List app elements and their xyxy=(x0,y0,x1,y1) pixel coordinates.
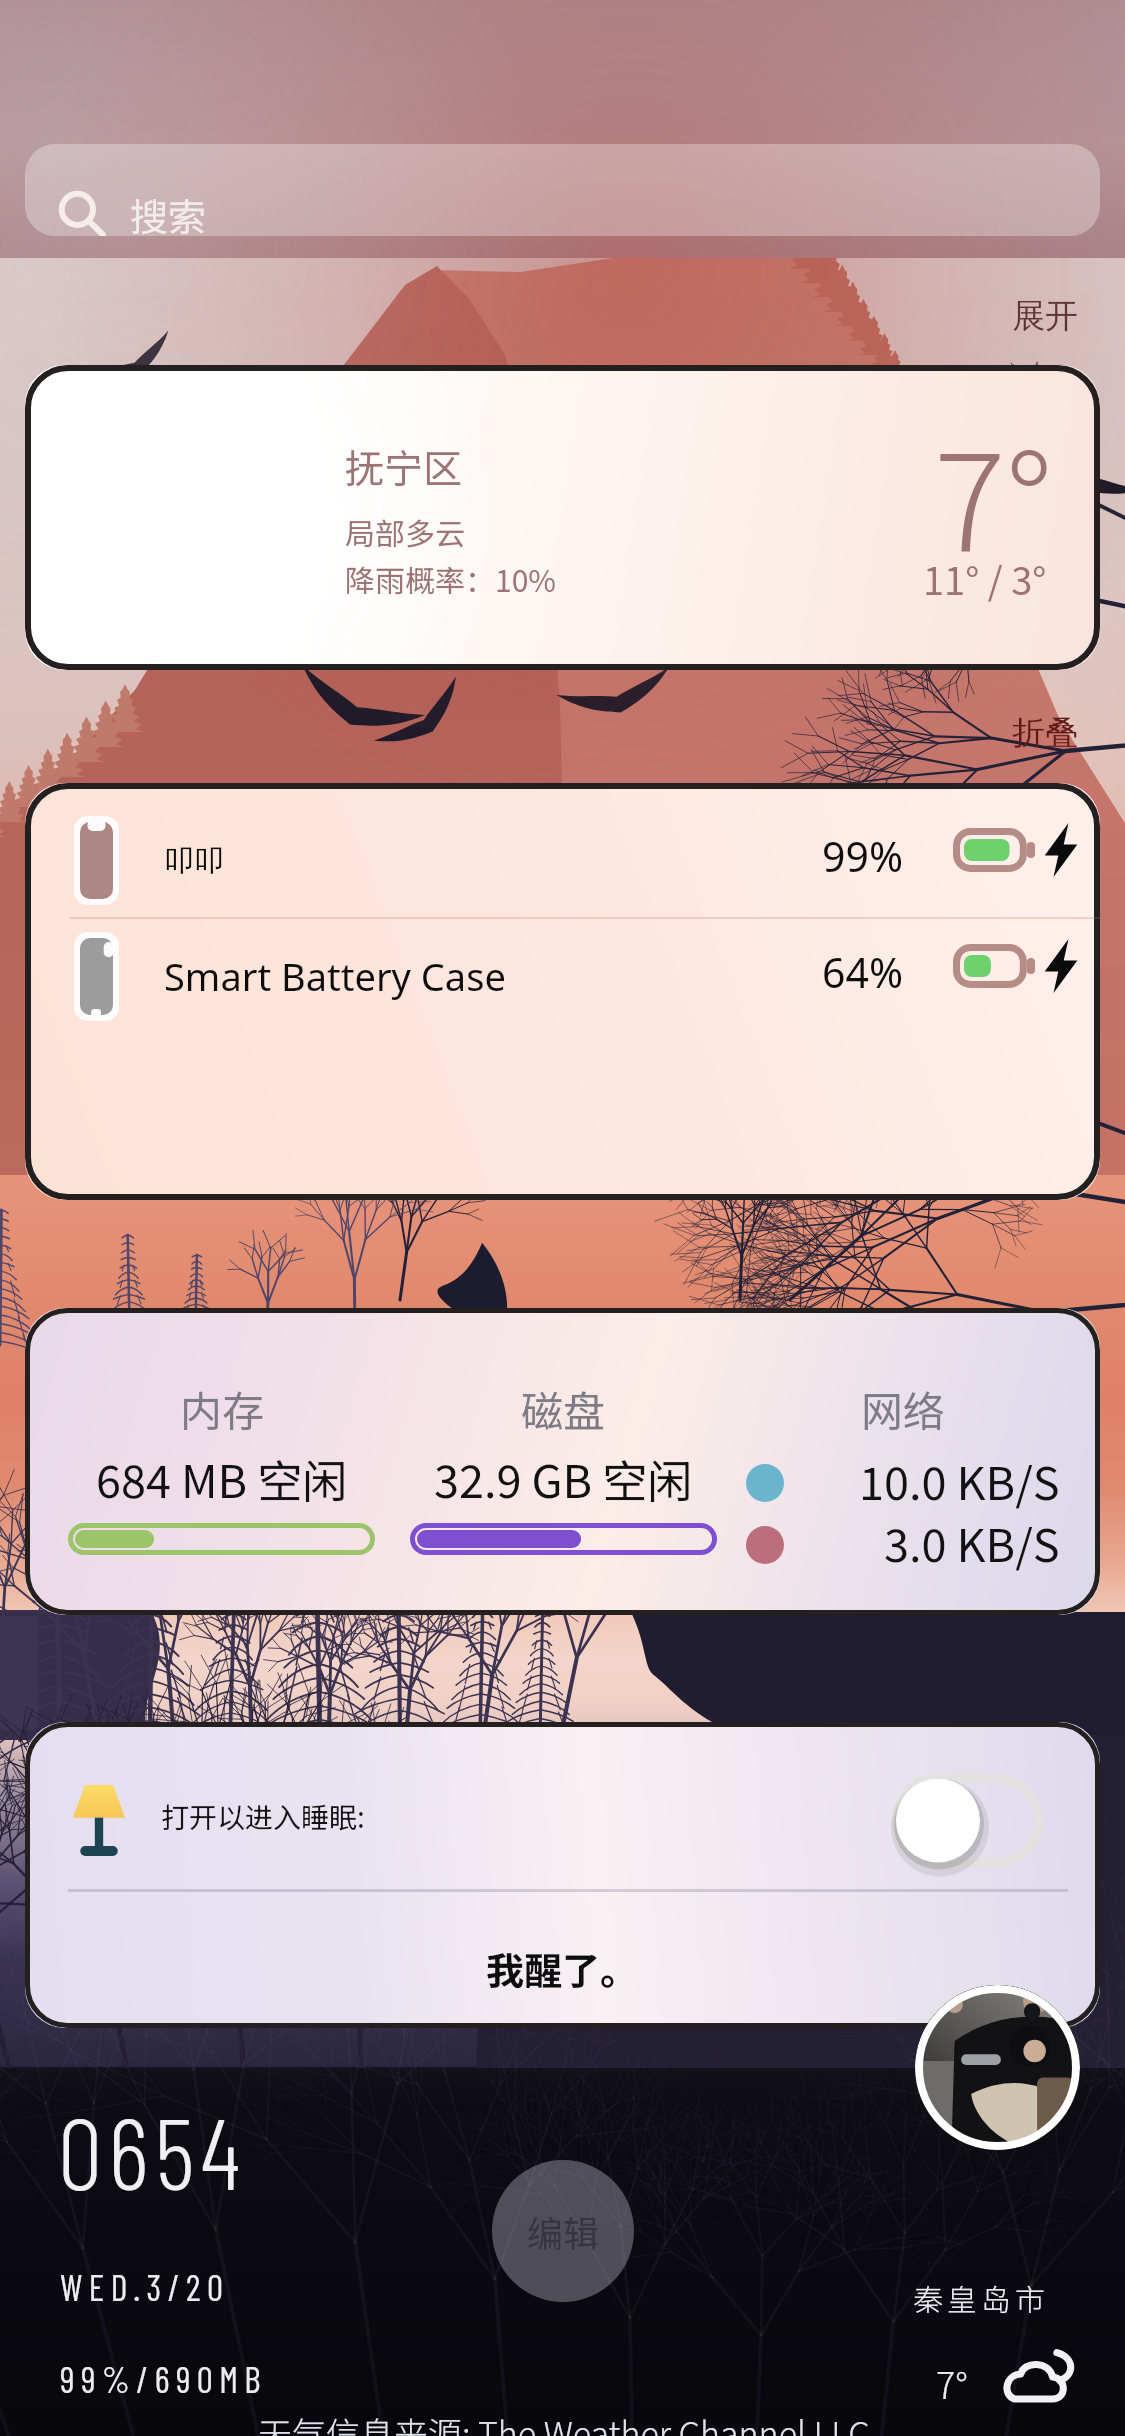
button[interactable]: 展开 xyxy=(1012,295,1078,337)
staticText: 折叠 xyxy=(1012,712,1078,754)
staticText: WED.3/20 xyxy=(60,2265,230,2308)
staticText: 打开以进入睡眠: xyxy=(161,1796,365,1837)
staticText: 降雨概率：10% xyxy=(345,557,556,600)
button[interactable]: 折叠 xyxy=(1012,712,1078,754)
staticText: 我醒了。 xyxy=(486,1941,639,1996)
staticText: 32.9 GB 空闲 xyxy=(434,1446,693,1511)
staticText: 天气信息来源: The Weather Channel LLC xyxy=(258,2408,870,2436)
button[interactable]: 打开以进入睡眠: xyxy=(25,1722,1100,2028)
staticText: 磁盘 xyxy=(521,1378,606,1439)
staticText: 秦皇岛市 xyxy=(913,2276,1049,2319)
staticText: 99%/690MB xyxy=(60,2357,267,2400)
staticText: 684 MB 空闲 xyxy=(96,1446,348,1511)
staticText: 编辑 xyxy=(527,2205,600,2257)
button[interactable]: 搜索 xyxy=(25,144,1100,236)
button[interactable]: 叩叩 xyxy=(25,783,1100,1200)
button[interactable]: Profile picture xyxy=(915,1985,1080,2150)
staticText: 3.0 KB/S xyxy=(884,1510,1060,1575)
button[interactable]: 叩叩 xyxy=(25,783,1100,917)
button[interactable]: Smart Battery Case xyxy=(25,899,1100,1033)
staticText: 展开 xyxy=(1012,295,1078,337)
button[interactable]: 抚宁区 xyxy=(25,365,1100,670)
button[interactable]: 内存 xyxy=(25,1308,1100,1615)
staticText: 网络 xyxy=(861,1378,946,1439)
staticText: 局部多云 xyxy=(345,510,465,553)
button[interactable]: Toggle sleep mode xyxy=(892,1774,1043,1867)
staticText: Smart Battery Case xyxy=(164,950,506,1002)
staticText: 64% xyxy=(822,944,903,1000)
staticText: 内存 xyxy=(180,1378,265,1439)
staticText: 10.0 KB/S xyxy=(859,1448,1060,1513)
staticText: 叩叩 xyxy=(164,841,224,879)
staticText: 99% xyxy=(822,828,903,884)
staticText: 11° / 3° xyxy=(923,551,1047,606)
staticText: 抚宁区 xyxy=(345,438,463,494)
staticText: 7° xyxy=(936,2357,968,2409)
button[interactable]: 编辑 xyxy=(492,2160,634,2302)
staticText: 7° xyxy=(934,396,1053,590)
staticText: 搜索 xyxy=(130,187,207,236)
staticText: 0654 xyxy=(58,2090,247,2210)
